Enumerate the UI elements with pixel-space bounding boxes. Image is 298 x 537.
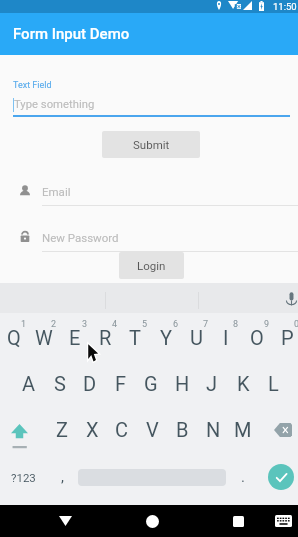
button[interactable]: J (197, 361, 227, 407)
staticText: B (176, 418, 189, 441)
button[interactable]: A (14, 361, 44, 407)
staticText: A (22, 372, 36, 395)
staticText: New Password (42, 231, 119, 244)
staticText: H (175, 372, 190, 395)
staticText: 7 (203, 319, 209, 330)
staticText: S (54, 372, 66, 395)
button[interactable]: Submit (102, 131, 200, 158)
staticText: T (129, 326, 141, 349)
button[interactable]: H (167, 361, 197, 407)
staticText: 5 (142, 319, 148, 330)
staticText: J (206, 372, 218, 395)
staticText: Type something (14, 98, 95, 111)
staticText: . (241, 468, 245, 486)
staticText: Email (42, 185, 71, 198)
button[interactable]: G (136, 361, 166, 407)
staticText: W (35, 326, 53, 349)
staticText: Z (56, 418, 68, 441)
staticText: 6 (173, 319, 179, 330)
staticText: U (190, 326, 203, 349)
staticText: F (115, 372, 127, 395)
staticText: Text Field (13, 80, 52, 91)
staticText: N (206, 418, 221, 441)
button[interactable]: F (106, 361, 136, 407)
button[interactable]: P (272, 315, 298, 361)
button[interactable]: L (258, 361, 288, 407)
button[interactable]: Enter (260, 454, 298, 500)
staticText: M (234, 418, 252, 441)
button[interactable]: . (226, 454, 260, 500)
button[interactable]: Email (0, 185, 298, 211)
button[interactable]: Q (0, 315, 29, 361)
button[interactable]: Recents (208, 505, 268, 537)
staticText: 1 (21, 319, 27, 330)
button[interactable]: N (198, 407, 228, 453)
staticText: V (146, 418, 159, 441)
staticText: Form Input Demo (13, 25, 130, 43)
staticText: 9 (264, 319, 270, 330)
staticText: C (115, 418, 129, 441)
staticText: 3 (82, 319, 88, 330)
button[interactable]: W (29, 315, 59, 361)
staticText: ?123 (11, 471, 36, 484)
button[interactable]: D (75, 361, 105, 407)
button[interactable]: C (107, 407, 137, 453)
staticText: E (69, 326, 81, 349)
button[interactable]: R (90, 315, 120, 361)
button[interactable]: New Password (0, 231, 298, 257)
button[interactable]: T (120, 315, 150, 361)
button[interactable]: X (77, 407, 107, 453)
staticText: 4 (112, 319, 118, 330)
button[interactable]: O (242, 315, 272, 361)
staticText: O (250, 326, 264, 349)
staticText: L (268, 372, 279, 395)
button[interactable]: Backspace (257, 407, 298, 453)
button[interactable]: U (181, 315, 211, 361)
button[interactable]: Switch keyboard (268, 505, 298, 537)
button[interactable]: B (167, 407, 197, 453)
staticText: I (223, 326, 229, 349)
button[interactable]: K (228, 361, 258, 407)
staticText: P (281, 326, 294, 349)
button[interactable]: Login (119, 252, 184, 279)
staticText: K (237, 372, 250, 395)
button[interactable]: Y (151, 315, 181, 361)
button[interactable]: V (137, 407, 167, 453)
button[interactable]: Space (78, 454, 226, 500)
staticText: 8 (233, 319, 239, 330)
staticText: 11:50 (273, 1, 297, 12)
button[interactable]: M (228, 407, 258, 453)
staticText: X (86, 418, 99, 441)
staticText: Submit (133, 138, 170, 151)
staticText: R (99, 326, 112, 349)
button[interactable]: Form Input Demo (0, 13, 298, 55)
staticText: D (83, 372, 97, 395)
button[interactable]: ?123 (0, 454, 46, 500)
button[interactable]: E (60, 315, 90, 361)
staticText: G (144, 372, 158, 395)
staticText: 2 (51, 319, 57, 330)
button[interactable]: Z (47, 407, 77, 453)
staticText: , (61, 468, 64, 486)
button[interactable]: I (211, 315, 241, 361)
button[interactable]: Shift (0, 407, 45, 453)
staticText: Y (160, 326, 173, 349)
staticText: 0 (294, 319, 298, 330)
button[interactable]: Back (20, 505, 110, 537)
staticText: Q (7, 326, 21, 349)
button[interactable]: Voice input (280, 287, 298, 309)
staticText: Login (137, 259, 166, 272)
button[interactable]: Home (110, 505, 195, 537)
button[interactable]: , (46, 454, 78, 500)
button[interactable]: S (45, 361, 75, 407)
